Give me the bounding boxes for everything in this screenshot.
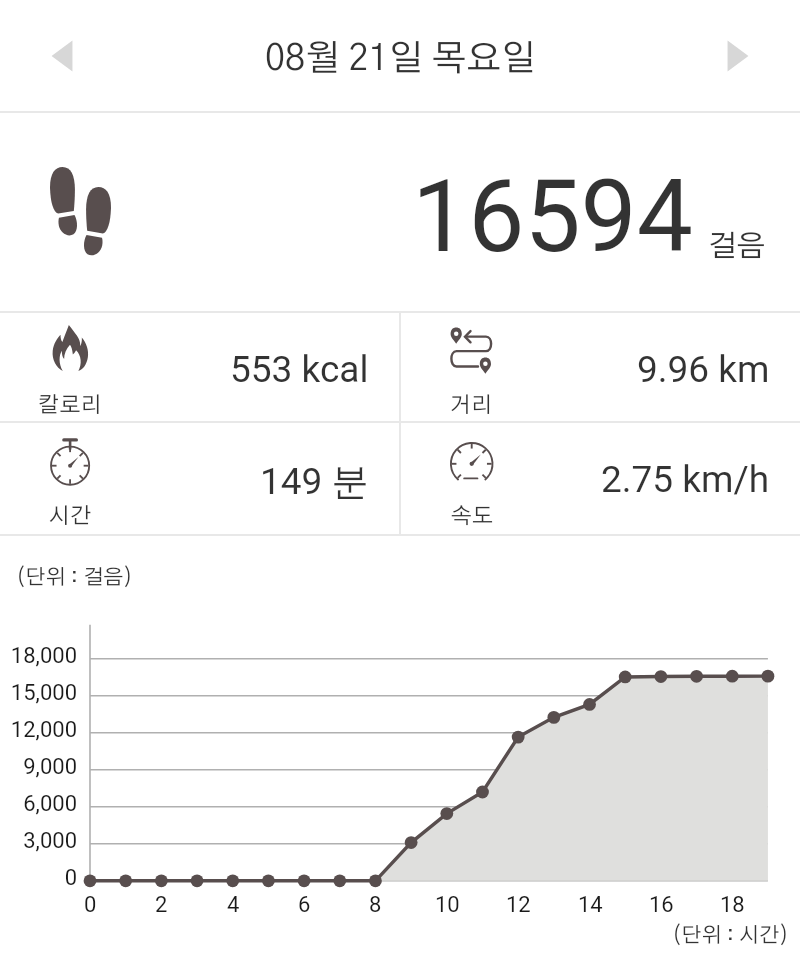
staticText: 4	[227, 892, 240, 918]
staticText: 8	[369, 892, 382, 918]
staticText: 0	[0, 865, 77, 891]
staticText: 6,000	[0, 791, 77, 817]
staticText: 0	[84, 892, 97, 918]
staticText: 14	[578, 892, 603, 918]
staticText: 거리	[411, 394, 531, 416]
staticText: 16	[649, 892, 674, 918]
staticText: 16594	[412, 158, 694, 275]
staticText: 08월 21일 목요일	[265, 41, 536, 77]
staticText: 6	[298, 892, 311, 918]
button[interactable]: Next day	[702, 20, 774, 92]
staticText: 시간	[10, 505, 130, 527]
button[interactable]: 16594	[0, 113, 800, 311]
staticText: 칼로리	[10, 394, 130, 416]
staticText: 149 분	[260, 458, 369, 505]
staticText: 10	[435, 892, 460, 918]
button[interactable]: 거리	[401, 313, 800, 421]
staticText: 12,000	[0, 717, 77, 743]
staticText: 18,000	[0, 643, 77, 669]
staticText: 걸음	[708, 232, 766, 262]
button[interactable]: Previous day	[26, 20, 98, 92]
staticText: 553 kcal	[230, 348, 369, 391]
staticText: 2	[155, 892, 168, 918]
staticText: 9,000	[0, 754, 77, 780]
staticText: 18	[720, 892, 745, 918]
staticText: 12	[506, 892, 531, 918]
button[interactable]: 시간	[0, 423, 399, 534]
staticText: 2.75 km/h	[601, 458, 770, 501]
staticText: 15,000	[0, 680, 77, 706]
button[interactable]: 칼로리	[0, 313, 399, 421]
button[interactable]: 속도	[401, 423, 800, 534]
staticText: (단위 : 걸음)	[16, 567, 133, 588]
staticText: (단위 : 시간)	[672, 925, 789, 946]
staticText: 3,000	[0, 828, 77, 854]
staticText: 9.96 km	[637, 348, 770, 391]
staticText: 속도	[412, 505, 532, 527]
